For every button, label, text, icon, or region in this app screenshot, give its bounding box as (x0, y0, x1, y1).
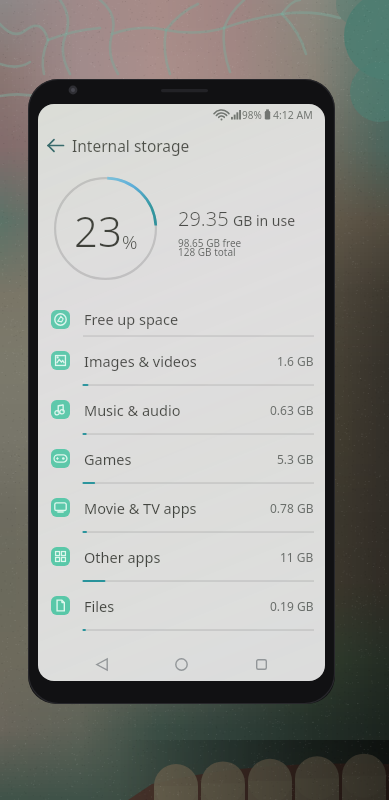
button[interactable]: Recent apps (241, 647, 281, 681)
staticText: % (122, 229, 138, 255)
button[interactable]: Home (161, 647, 201, 681)
staticText: 29.35 (178, 205, 229, 232)
staticText: Other apps (84, 547, 161, 567)
staticText: 0.63 GB (270, 402, 314, 418)
button[interactable]: Navigate up (38, 128, 72, 162)
staticText: 11 GB (280, 549, 314, 565)
staticText: Music & audio (84, 400, 181, 420)
staticText: 0.78 GB (270, 500, 314, 516)
button[interactable]: Music & audio (38, 387, 325, 436)
staticText: 128 GB total (178, 245, 236, 259)
staticText: 98.65 GB free (178, 236, 242, 250)
staticText: Free up space (84, 309, 179, 329)
staticText: Files (84, 596, 115, 616)
staticText: 5.3 GB (277, 451, 314, 467)
staticText: 98% (242, 108, 262, 122)
staticText: 1.6 GB (277, 353, 314, 369)
button[interactable]: Games (38, 436, 325, 485)
staticText: 23 (74, 202, 122, 259)
button[interactable]: Other apps (38, 534, 325, 583)
staticText: Games (84, 449, 132, 469)
button[interactable]: Movie & TV apps (38, 485, 325, 534)
button[interactable]: Images & videos (38, 338, 325, 387)
button[interactable]: Files (38, 583, 325, 632)
staticText: Internal storage (72, 135, 190, 156)
staticText: Movie & TV apps (84, 498, 197, 518)
staticText: GB in use (233, 211, 296, 230)
staticText: 0.19 GB (270, 598, 314, 614)
button[interactable]: Back (82, 647, 122, 681)
staticText: 4:12 AM (273, 108, 313, 122)
button[interactable]: Free up space (38, 304, 325, 338)
staticText: Images & videos (84, 351, 197, 371)
